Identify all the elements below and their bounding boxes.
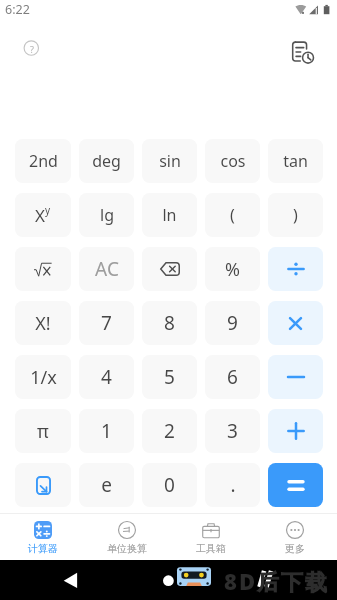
- other: Minus: [288, 369, 304, 385]
- button[interactable]: .: [205, 463, 260, 507]
- staticText: y: [45, 203, 51, 217]
- button[interactable]: π: [15, 409, 71, 453]
- button[interactable]: ln: [142, 193, 197, 237]
- button[interactable]: Help: [19, 36, 44, 61]
- staticText: AC: [95, 256, 119, 282]
- button[interactable]: Divide: [268, 247, 323, 291]
- button[interactable]: Enter: [15, 463, 71, 507]
- button[interactable]: Minus: [268, 355, 323, 399]
- staticText: 1/x: [30, 365, 57, 390]
- staticText: %: [225, 257, 240, 282]
- button[interactable]: 1: [79, 409, 134, 453]
- staticText: cos: [220, 150, 246, 172]
- button[interactable]: X: [15, 193, 71, 237]
- staticText: 7: [101, 310, 112, 336]
- staticText: 8: [164, 310, 175, 336]
- button[interactable]: 8: [142, 301, 197, 345]
- staticText: 9: [227, 310, 238, 336]
- button[interactable]: 4: [79, 355, 134, 399]
- staticText: (: [230, 204, 235, 226]
- other: Plus: [288, 423, 304, 439]
- button[interactable]: %: [205, 247, 260, 291]
- staticText: X!: [35, 311, 51, 336]
- button[interactable]: 1/x: [15, 355, 71, 399]
- staticText: 2: [164, 418, 175, 444]
- button[interactable]: 2: [142, 409, 197, 453]
- button[interactable]: tan: [268, 139, 323, 183]
- button[interactable]: ): [268, 193, 323, 237]
- button[interactable]: Multiply: [268, 301, 323, 345]
- staticText: X: [35, 204, 45, 227]
- staticText: 工具箱: [196, 542, 226, 555]
- staticText: lg: [100, 204, 114, 226]
- button[interactable]: lg: [79, 193, 134, 237]
- button[interactable]: e: [79, 463, 134, 507]
- button[interactable]: deg: [79, 139, 134, 183]
- staticText: 1: [101, 418, 112, 444]
- button[interactable]: 工具箱: [169, 514, 253, 555]
- staticText: 6:22: [5, 1, 30, 18]
- button[interactable]: Plus: [268, 409, 323, 453]
- button[interactable]: 6: [205, 355, 260, 399]
- button[interactable]: History: [291, 40, 317, 66]
- button[interactable]: 3: [205, 409, 260, 453]
- button[interactable]: Equals: [268, 463, 323, 507]
- staticText: deg: [92, 150, 121, 172]
- other: Backspace: [160, 262, 180, 276]
- staticText: 5: [164, 364, 175, 390]
- button[interactable]: cos: [205, 139, 260, 183]
- button[interactable]: Backspace: [142, 247, 197, 291]
- staticText: 更多: [285, 542, 305, 555]
- staticText: 单位换算: [107, 542, 147, 555]
- staticText: 0: [164, 472, 175, 498]
- staticText: ?: [30, 43, 34, 55]
- button[interactable]: 单位换算: [85, 514, 169, 555]
- staticText: 6: [227, 364, 238, 390]
- other: Enter: [36, 476, 51, 495]
- button[interactable]: [15, 247, 71, 291]
- staticText: tan: [283, 150, 308, 172]
- staticText: sin: [159, 150, 181, 172]
- staticText: 8D后下载: [224, 566, 330, 596]
- button[interactable]: 计算器: [0, 514, 85, 555]
- staticText: .: [230, 472, 236, 498]
- staticText: ln: [162, 204, 177, 226]
- button[interactable]: 7: [79, 301, 134, 345]
- other: Multiply: [289, 317, 302, 330]
- button[interactable]: sin: [142, 139, 197, 183]
- button[interactable]: (: [205, 193, 260, 237]
- staticText: ): [293, 204, 298, 226]
- staticText: 4: [101, 364, 112, 390]
- staticText: 3: [227, 418, 238, 444]
- other: Divide: [288, 261, 304, 277]
- button[interactable]: 9: [205, 301, 260, 345]
- button[interactable]: AC: [79, 247, 134, 291]
- button[interactable]: 更多: [253, 514, 337, 555]
- staticText: 计算器: [28, 542, 58, 555]
- button[interactable]: 2nd: [15, 139, 71, 183]
- staticText: π: [37, 419, 49, 444]
- button[interactable]: 5: [142, 355, 197, 399]
- staticText: e: [101, 472, 112, 498]
- other: Equals: [288, 480, 304, 491]
- button[interactable]: X!: [15, 301, 71, 345]
- staticText: 2nd: [29, 150, 58, 172]
- button[interactable]: 0: [142, 463, 197, 507]
